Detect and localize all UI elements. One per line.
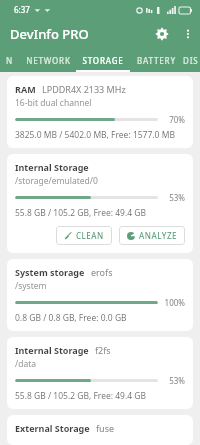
staticText: 3825.0 MB / 5402.0 MB, Free: 1577.0 MB: [15, 129, 175, 141]
staticText: fuse: [96, 422, 115, 434]
staticText: 53%: [169, 375, 185, 386]
staticText: ANALYZE: [139, 230, 177, 241]
staticText: LPDDR4X 2133 MHz: [42, 83, 126, 95]
staticText: 16-bit dual channel: [15, 97, 92, 109]
staticText: N: [6, 55, 14, 66]
staticText: 55.8 GB / 105.2 GB, Free: 49.4 GB: [15, 207, 147, 219]
button[interactable]: NETWORK: [20, 48, 76, 72]
staticText: f2fs: [95, 344, 111, 356]
staticText: 6:37: [14, 4, 30, 15]
staticText: RAM: [15, 83, 36, 95]
button[interactable]: DIS: [182, 48, 200, 72]
button[interactable]: BATTERY: [130, 48, 182, 72]
staticText: /data: [15, 358, 36, 370]
staticText: Internal Storage: [15, 161, 89, 173]
button[interactable]: RAM: [7, 76, 193, 148]
staticText: STORAGE: [82, 55, 124, 66]
staticText: DevInfo PRO: [10, 25, 89, 43]
staticText: Internal Storage: [15, 344, 89, 356]
staticText: System storage: [15, 266, 85, 278]
button[interactable]: System storage: [7, 259, 193, 331]
staticText: 53%: [169, 192, 185, 203]
staticText: External Storage: [15, 422, 90, 434]
button[interactable]: External Storage: [7, 415, 193, 445]
button[interactable]: Internal Storage: [7, 337, 193, 409]
staticText: /storage/emulated/0: [15, 175, 98, 187]
staticText: 55.8 GB / 105.2 GB, Free: 49.4 GB: [15, 390, 147, 402]
staticText: CLEAN: [76, 230, 104, 241]
button[interactable]: Settings: [148, 20, 176, 48]
staticText: erofs: [91, 266, 113, 278]
staticText: 100%: [164, 297, 185, 308]
button[interactable]: N: [0, 48, 20, 72]
staticText: 0.8 GB / 0.8 GB, Free: 0.0 GB: [15, 312, 127, 324]
staticText: /system: [15, 280, 47, 292]
staticText: BATTERY: [137, 55, 176, 66]
button[interactable]: CLEAN: [56, 226, 112, 245]
staticText: DIS: [183, 55, 199, 66]
button[interactable]: ANALYZE: [119, 226, 185, 245]
button[interactable]: STORAGE: [76, 48, 130, 72]
button[interactable]: Internal Storage: [7, 154, 193, 253]
staticText: NETWORK: [26, 55, 71, 66]
staticText: 70%: [169, 114, 185, 125]
button[interactable]: More options: [176, 22, 200, 46]
